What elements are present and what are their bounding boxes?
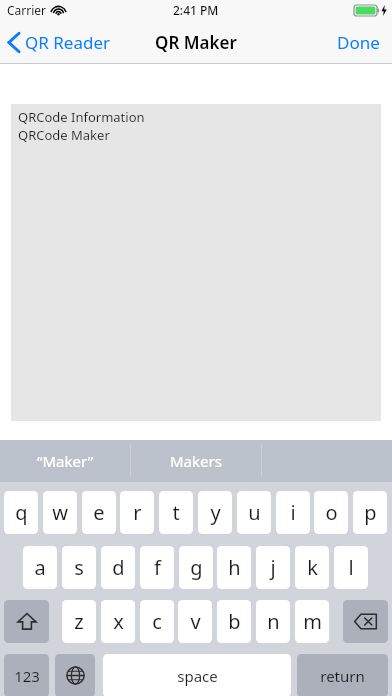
- staticText: q: [15, 499, 28, 526]
- staticText: r: [133, 499, 142, 526]
- button[interactable]: r: [120, 491, 154, 534]
- button[interactable]: b: [217, 600, 251, 643]
- staticText: e: [93, 499, 105, 526]
- button[interactable]: w: [43, 491, 77, 534]
- staticText: v: [190, 608, 201, 635]
- staticText: d: [112, 554, 125, 581]
- staticText: u: [248, 499, 261, 526]
- button[interactable]: t: [159, 491, 193, 534]
- staticText: QR Maker: [155, 31, 237, 54]
- button[interactable]: y: [198, 491, 232, 534]
- button[interactable]: c: [140, 600, 174, 643]
- button[interactable]: s: [62, 546, 96, 589]
- staticText: y: [210, 499, 221, 526]
- staticText: Makers: [170, 451, 222, 471]
- button[interactable]: d: [101, 546, 135, 589]
- button[interactable]: o: [314, 491, 348, 534]
- button[interactable]: x: [101, 600, 135, 643]
- staticText: Carrier: [7, 2, 47, 18]
- staticText: i: [290, 499, 296, 526]
- staticText: return: [320, 666, 365, 686]
- staticText: Done: [337, 31, 380, 54]
- button[interactable]: m: [295, 600, 329, 643]
- staticText: w: [52, 499, 68, 526]
- button[interactable]: “Maker”: [0, 440, 130, 482]
- staticText: QRCode Information: [18, 108, 145, 126]
- staticText: o: [325, 499, 338, 526]
- staticText: c: [152, 608, 162, 635]
- staticText: QR Reader: [25, 31, 111, 54]
- button[interactable]: QRCode Information: [11, 104, 381, 421]
- button[interactable]: l: [334, 546, 368, 589]
- button[interactable]: Next keyboard: [55, 654, 95, 696]
- button[interactable]: return: [297, 654, 388, 696]
- staticText: p: [364, 499, 377, 526]
- staticText: “Maker”: [37, 451, 94, 471]
- button[interactable]: k: [295, 546, 329, 589]
- staticText: 2:41 PM: [173, 2, 219, 18]
- staticText: k: [307, 554, 318, 581]
- button[interactable]: a: [23, 546, 57, 589]
- button[interactable]: j: [256, 546, 290, 589]
- button[interactable]: n: [256, 600, 290, 643]
- staticText: b: [228, 608, 241, 635]
- button[interactable]: Shift: [4, 600, 49, 643]
- staticText: g: [190, 554, 203, 581]
- staticText: z: [74, 608, 84, 635]
- button[interactable]: v: [178, 600, 212, 643]
- staticText: 123: [14, 666, 40, 686]
- staticText: t: [172, 499, 180, 526]
- staticText: space: [177, 666, 218, 686]
- staticText: s: [74, 554, 84, 581]
- button[interactable]: 123: [4, 654, 49, 696]
- button[interactable]: QR Reader: [0, 25, 121, 60]
- staticText: f: [154, 554, 161, 581]
- staticText: j: [270, 554, 276, 581]
- staticText: m: [303, 608, 322, 635]
- button[interactable]: z: [62, 600, 96, 643]
- staticText: h: [228, 554, 241, 581]
- staticText: QRCode Maker: [18, 126, 110, 144]
- button[interactable]: Delete: [343, 600, 388, 643]
- button[interactable]: p: [353, 491, 387, 534]
- staticText: x: [113, 608, 124, 635]
- staticText: n: [267, 608, 280, 635]
- button[interactable]: f: [140, 546, 174, 589]
- staticText: l: [348, 554, 354, 581]
- button[interactable]: q: [4, 491, 38, 534]
- staticText: a: [34, 554, 46, 581]
- button[interactable]: e: [82, 491, 116, 534]
- button[interactable]: i: [276, 491, 310, 534]
- button[interactable]: space: [103, 654, 291, 696]
- button[interactable]: h: [217, 546, 251, 589]
- button[interactable]: g: [179, 546, 213, 589]
- button[interactable]: Makers: [131, 440, 261, 482]
- button[interactable]: u: [237, 491, 271, 534]
- button[interactable]: Done: [325, 23, 392, 62]
